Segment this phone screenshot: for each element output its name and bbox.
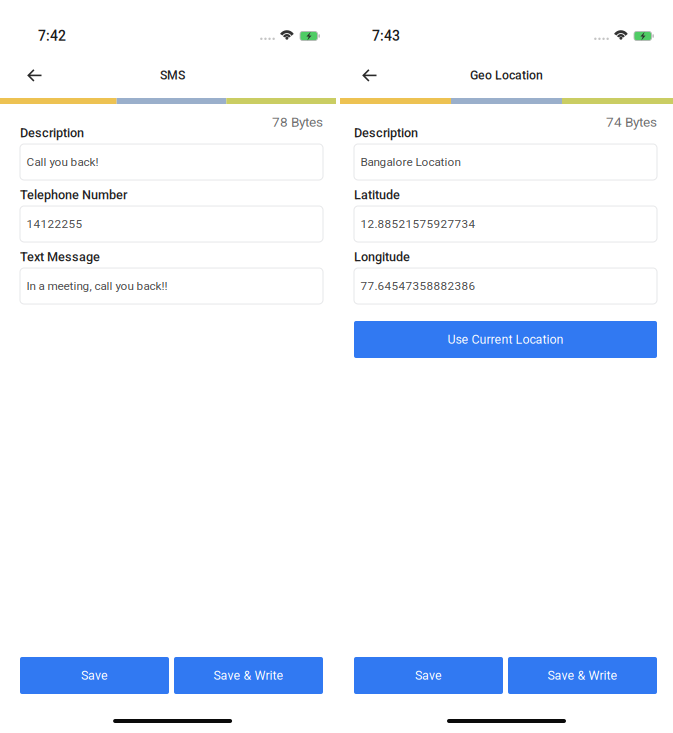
staticText: SMS — [160, 68, 185, 82]
staticText: Save & Write — [213, 668, 283, 683]
staticText: Save — [81, 668, 108, 683]
staticText: In a meeting, call you back!! — [26, 279, 167, 293]
staticText: Text Message — [20, 250, 100, 264]
staticText: Description — [20, 126, 84, 140]
button[interactable]: 14122255 — [20, 206, 323, 242]
button[interactable]: Save & Write — [174, 657, 323, 694]
staticText: 12.88521575927734 — [360, 217, 475, 231]
staticText: 7:43 — [372, 28, 400, 44]
button[interactable]: Back — [18, 57, 52, 91]
staticText: Latitude — [354, 188, 400, 202]
button[interactable]: Call you back! — [20, 144, 323, 180]
staticText: Save & Write — [547, 668, 617, 683]
staticText: 74 Bytes — [606, 114, 657, 130]
staticText: 14122255 — [26, 217, 82, 231]
button[interactable]: Save & Write — [508, 657, 657, 694]
staticText: Use Current Location — [447, 332, 563, 347]
button[interactable]: Back — [353, 57, 387, 91]
button[interactable]: 77.64547358882386 — [354, 268, 657, 304]
staticText: 77.64547358882386 — [360, 279, 475, 293]
staticText: 78 Bytes — [272, 114, 323, 130]
staticText: 7:42 — [38, 28, 66, 44]
staticText: Telephone Number — [20, 188, 127, 202]
staticText: Geo Location — [470, 68, 543, 82]
button[interactable]: Bangalore Location — [354, 144, 657, 180]
staticText: Description — [354, 126, 418, 140]
button[interactable]: Use Current Location — [354, 321, 657, 358]
button[interactable]: Save — [20, 657, 169, 694]
button[interactable]: Save — [354, 657, 503, 694]
button[interactable]: In a meeting, call you back!! — [20, 268, 323, 304]
staticText: Save — [415, 668, 442, 683]
staticText: Longitude — [354, 250, 410, 264]
staticText: Call you back! — [26, 155, 98, 169]
button[interactable]: 12.88521575927734 — [354, 206, 657, 242]
staticText: Bangalore Location — [360, 155, 460, 169]
